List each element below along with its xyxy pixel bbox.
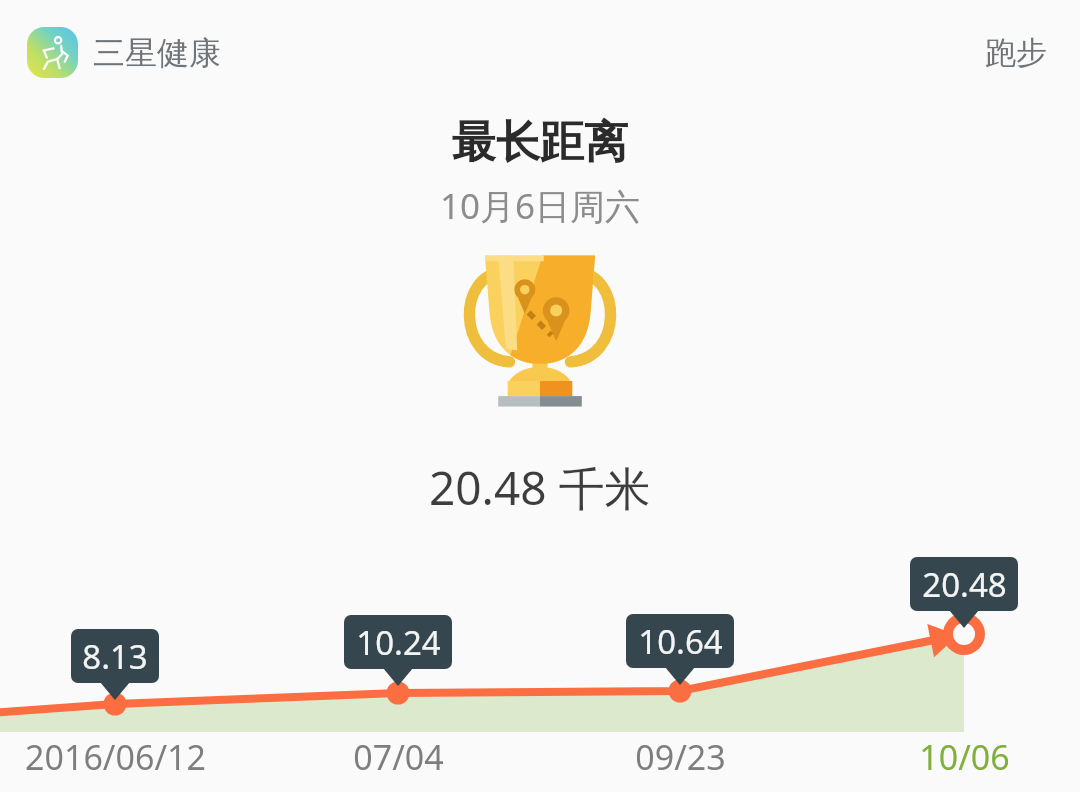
staticText: 10.64 <box>638 619 723 664</box>
button[interactable]: 07/04 <box>323 726 473 788</box>
button[interactable]: 8.13 <box>71 629 159 683</box>
button[interactable]: 2016/06/12 <box>0 726 235 788</box>
staticText: 2016/06/12 <box>25 734 206 780</box>
staticText: 三星健康 <box>93 33 221 73</box>
staticText: 8.13 <box>82 634 148 679</box>
staticText: 20.48 千米 <box>429 456 651 519</box>
staticText: 07/04 <box>353 734 444 780</box>
staticText: 最长距离 <box>452 115 628 170</box>
button[interactable]: 09/23 <box>605 726 755 788</box>
staticText: 09/23 <box>635 734 726 780</box>
button[interactable]: 三星健康 <box>93 33 221 73</box>
button[interactable]: 20.48 <box>910 557 1018 611</box>
button[interactable]: 10.64 <box>626 614 734 668</box>
staticText: 10月6日周六 <box>440 182 641 230</box>
button[interactable]: 10.24 <box>344 615 452 669</box>
staticText: 10.24 <box>356 620 441 665</box>
staticText: 20.48 <box>922 562 1007 607</box>
staticText: 跑步 <box>985 33 1047 72</box>
button[interactable]: Samsung Health app icon <box>27 27 78 78</box>
staticText: 10/06 <box>919 734 1010 780</box>
button[interactable]: 跑步 <box>977 21 1055 84</box>
button[interactable]: 10/06 <box>889 726 1039 788</box>
